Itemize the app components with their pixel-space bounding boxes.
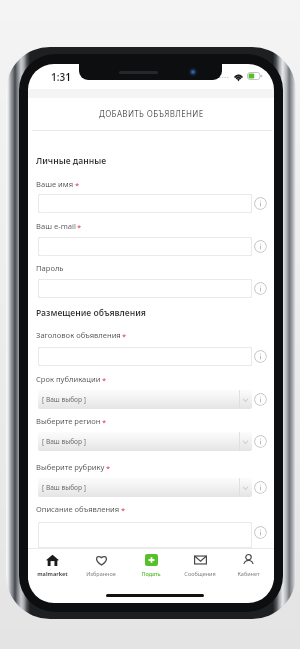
staticText: Пароль — [36, 263, 64, 273]
staticText: malmarket — [37, 570, 68, 577]
button[interactable] — [38, 194, 252, 213]
button[interactable]: [ Ваш выбор ] — [38, 390, 252, 409]
button[interactable]: malmarket — [28, 548, 76, 580]
button[interactable]: Info — [253, 480, 267, 494]
staticText: [ Ваш выбор ] — [42, 395, 86, 404]
staticText: Размещение объявления — [36, 307, 146, 319]
staticText: [ Ваш выбор ] — [42, 437, 86, 446]
staticText: Сообщения — [184, 570, 216, 577]
staticText: * — [102, 375, 107, 385]
button[interactable]: [ Ваш выбор ] — [38, 478, 252, 497]
button[interactable] — [38, 347, 252, 366]
staticText: 1:31 — [51, 70, 71, 84]
button[interactable] — [38, 237, 252, 256]
staticText: Выберите регион — [36, 416, 101, 426]
button[interactable]: Кабинет — [224, 548, 272, 580]
staticText: Срок публикации — [36, 374, 101, 384]
button[interactable]: Подать — [127, 548, 175, 580]
button[interactable]: Info — [253, 349, 267, 363]
button[interactable]: Сообщения — [176, 548, 224, 580]
staticText: * — [75, 180, 80, 190]
staticText: Ваше имя — [36, 179, 74, 189]
button[interactable]: Info — [253, 525, 267, 539]
button[interactable] — [38, 279, 252, 298]
staticText: * — [106, 463, 111, 473]
staticText: Избранное — [86, 570, 116, 577]
staticText: Личные данные — [36, 155, 107, 167]
staticText: Описание объявления — [36, 504, 120, 514]
button[interactable] — [38, 522, 252, 548]
button[interactable]: Info — [253, 196, 267, 210]
button[interactable]: Info — [253, 239, 267, 253]
button[interactable]: Info — [253, 281, 267, 295]
button[interactable]: Избранное — [77, 548, 125, 580]
staticText: Выберите рубрику — [36, 462, 105, 472]
staticText: Кабинет — [237, 570, 260, 577]
staticText: * — [122, 331, 127, 341]
staticText: ДОБАВИТЬ ОБЪЯВЛЕНИЕ — [99, 108, 204, 119]
staticText: * — [102, 417, 107, 427]
button[interactable]: [ Ваш выбор ] — [38, 432, 252, 451]
staticText: Заголовок объявления — [36, 330, 121, 340]
staticText: [ Ваш выбор ] — [42, 483, 86, 492]
staticText: Ваш e-mail — [36, 221, 76, 231]
button[interactable]: Info — [253, 434, 267, 448]
staticText: * — [121, 505, 126, 515]
staticText: Подать — [141, 570, 161, 577]
staticText: * — [77, 222, 82, 232]
button[interactable]: Info — [253, 392, 267, 406]
